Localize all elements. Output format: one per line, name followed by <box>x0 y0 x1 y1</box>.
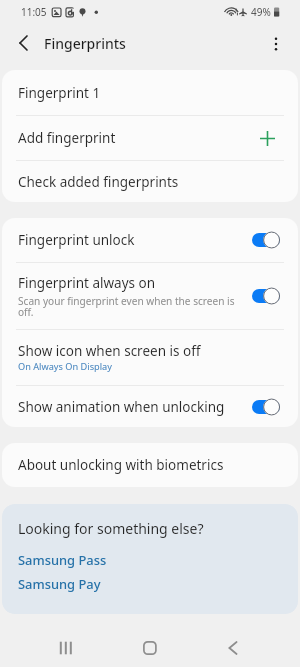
button[interactable]: Show animation when unlocking <box>2 386 298 427</box>
button[interactable]: Samsung Pay <box>18 575 101 593</box>
button[interactable]: Back <box>11 24 31 62</box>
staticText: On Always On Display <box>18 360 112 373</box>
button[interactable]: Back <box>200 614 300 667</box>
staticText: Fingerprint always on <box>18 274 156 292</box>
staticText: Looking for something else? <box>18 519 204 538</box>
button[interactable]: Toggle <box>252 398 280 416</box>
staticText: Samsung Pass <box>18 551 107 569</box>
button[interactable]: Fingerprint unlock <box>2 218 298 262</box>
button[interactable]: Add fingerprint <box>2 116 298 160</box>
staticText: Show icon when screen is off <box>18 342 201 360</box>
staticText: Check added fingerprints <box>18 173 179 191</box>
button[interactable]: Toggle <box>252 231 280 249</box>
staticText: Fingerprint 1 <box>18 84 101 102</box>
button[interactable]: More options <box>266 32 286 56</box>
staticText: Show animation when unlocking <box>18 398 225 416</box>
button[interactable]: Samsung Pass <box>18 551 107 569</box>
button[interactable]: Recent apps <box>0 614 100 667</box>
staticText: Fingerprint unlock <box>18 231 135 249</box>
button[interactable]: Toggle <box>252 287 280 305</box>
staticText: Scan your fingerprint even when the scre… <box>18 294 240 319</box>
button[interactable]: Check added fingerprints <box>2 161 298 202</box>
staticText: 49% <box>251 5 271 19</box>
staticText: About unlocking with biometrics <box>18 456 224 474</box>
staticText: 11:05 <box>21 5 47 19</box>
button[interactable]: Home <box>100 614 200 667</box>
staticText: Add fingerprint <box>18 129 260 147</box>
button[interactable]: About unlocking with biometrics <box>2 443 298 487</box>
staticText: Fingerprints <box>44 34 126 53</box>
button[interactable]: Fingerprint 1 <box>2 70 298 115</box>
staticText: Samsung Pay <box>18 575 101 593</box>
button[interactable]: Fingerprint always on <box>2 263 298 329</box>
button[interactable]: Show icon when screen is off <box>2 330 298 385</box>
